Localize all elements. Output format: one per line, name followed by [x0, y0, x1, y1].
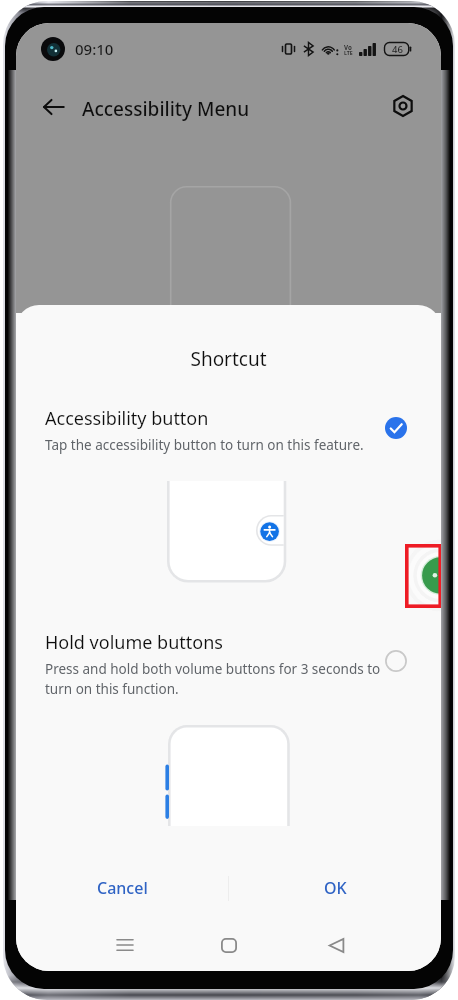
staticText: 46	[392, 43, 403, 56]
staticText: Vo	[344, 43, 352, 51]
button[interactable]: Home	[204, 919, 254, 971]
staticText: Press and hold both volume buttons for 3…	[45, 660, 382, 698]
button[interactable]: Back	[311, 919, 361, 971]
staticText: Tap the accessibility button to turn on …	[45, 436, 364, 454]
button[interactable]: Volume buttons preview	[158, 725, 294, 826]
button[interactable]: Hold volume buttons	[16, 626, 441, 700]
staticText: Cancel	[97, 877, 148, 899]
staticText: 09:10	[75, 39, 114, 59]
button[interactable]: Accessibility button	[16, 402, 441, 456]
staticText: Shortcut	[16, 346, 441, 372]
button[interactable]: Settings	[380, 83, 426, 129]
staticText: OK	[324, 877, 347, 899]
button[interactable]: Cancel	[16, 857, 229, 919]
staticText: LTE	[344, 49, 353, 56]
staticText: Hold volume buttons	[45, 630, 223, 655]
staticText: Accessibility Menu	[82, 96, 250, 122]
staticText: Accessibility button	[45, 406, 209, 431]
button[interactable]: Accessibility button preview	[167, 481, 291, 585]
button[interactable]: Accessibility button highlight	[405, 544, 441, 608]
button[interactable]: Recent apps	[100, 919, 150, 971]
button[interactable]: Back	[29, 86, 78, 128]
button[interactable]: OK	[229, 857, 441, 919]
